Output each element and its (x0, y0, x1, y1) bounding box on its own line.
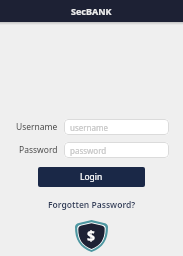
staticText: password (70, 145, 107, 156)
staticText: Forgotten Password? (48, 199, 136, 211)
staticText: Login (80, 171, 103, 183)
staticText: username (70, 122, 109, 133)
staticText: Username (16, 121, 58, 133)
staticText: SecBANK (71, 5, 112, 17)
button[interactable]: SecBANK (0, 0, 183, 22)
staticText: Password (19, 144, 58, 156)
button[interactable]: Forgotten Password? (48, 199, 136, 211)
button[interactable]: Login (38, 167, 145, 187)
staticText: $ (87, 226, 96, 245)
button[interactable]: password (64, 142, 169, 158)
button[interactable]: username (64, 119, 169, 135)
